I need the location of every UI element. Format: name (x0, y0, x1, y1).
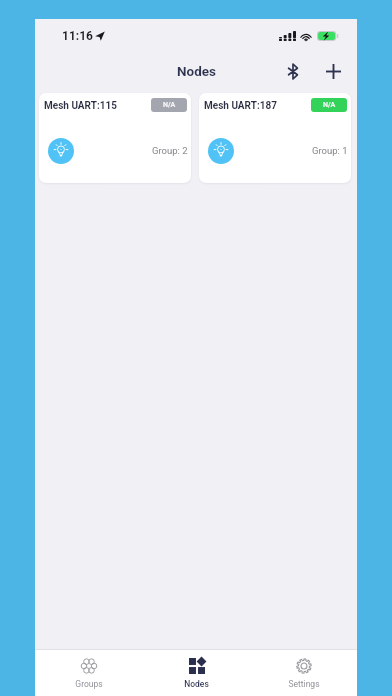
staticText: Group: 1 (312, 145, 348, 156)
staticText: Nodes (177, 63, 216, 79)
button[interactable]: N/A (151, 98, 187, 112)
button[interactable]: Toggle light (48, 138, 74, 164)
staticText: Settings (288, 679, 320, 689)
button[interactable]: Mesh UART:187 (199, 93, 351, 183)
button[interactable]: Nodes (143, 650, 250, 689)
staticText: Groups (75, 679, 103, 689)
staticText: Nodes (184, 679, 209, 689)
button[interactable]: Groups (35, 650, 143, 689)
button[interactable]: Settings (250, 650, 357, 689)
button[interactable]: N/A (311, 98, 347, 112)
button[interactable]: Mesh UART:115 (39, 93, 191, 183)
staticText: Mesh UART:115 (44, 100, 117, 112)
button[interactable]: Bluetooth (277, 55, 309, 87)
button[interactable]: Toggle light (208, 138, 234, 164)
staticText: Mesh UART:187 (204, 100, 277, 112)
button[interactable]: Add (317, 55, 349, 87)
staticText: 11:16 (62, 29, 93, 43)
staticText: Group: 2 (152, 145, 188, 156)
staticText: N/A (163, 101, 176, 109)
staticText: N/A (323, 101, 336, 109)
